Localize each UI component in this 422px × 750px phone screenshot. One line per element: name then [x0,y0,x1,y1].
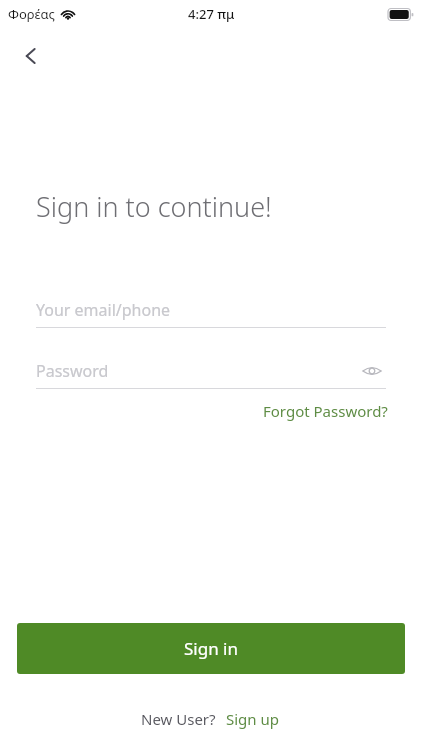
staticText: New User? [141,709,216,729]
button[interactable]: Show password [358,357,386,385]
staticText: Your email/phone [36,299,171,321]
button[interactable]: Sign up [224,706,281,732]
button[interactable]: Your email/phone [36,293,386,328]
staticText: Sign up [226,709,279,729]
staticText: Password [36,360,109,382]
staticText: Sign in to continue! [36,188,272,225]
button[interactable]: Sign in [17,623,405,674]
button[interactable]: Forgot Password? [261,397,390,425]
button[interactable]: Password [36,360,358,382]
button[interactable]: Back [12,36,52,76]
staticText: Sign in [184,637,238,660]
staticText: Φορέας [8,5,55,23]
staticText: 4:27 πμ [188,5,235,23]
staticText: Forgot Password? [263,401,388,421]
